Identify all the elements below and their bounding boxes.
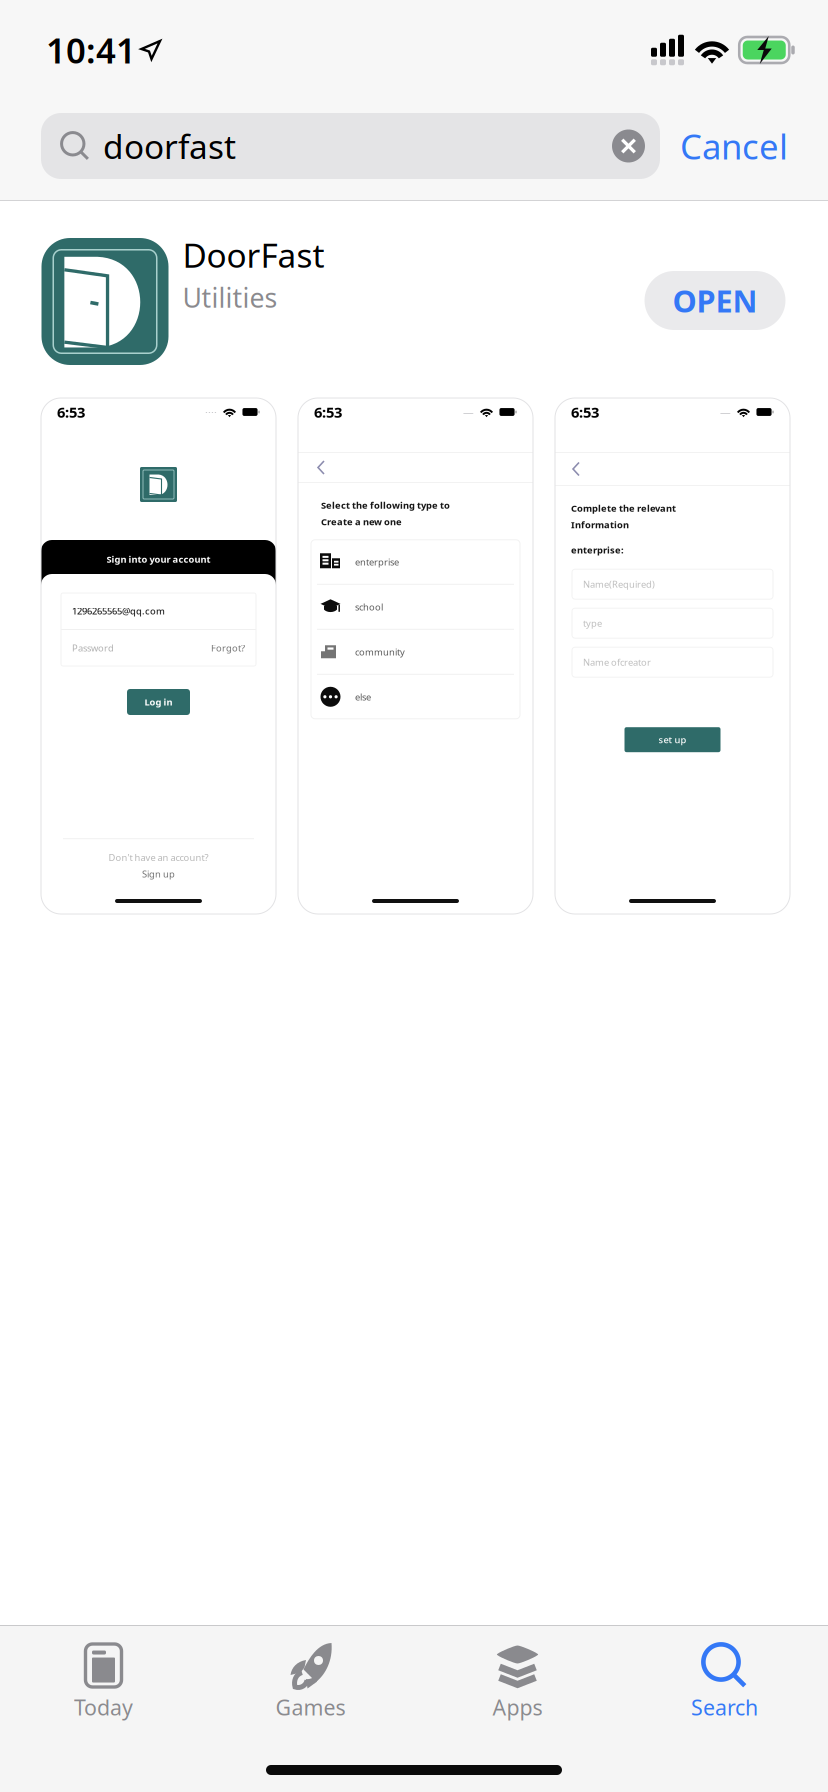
staticText: Create a new one <box>321 515 402 528</box>
staticText: Information <box>571 518 629 531</box>
button[interactable]: Apps <box>414 1642 621 1739</box>
staticText: Utilities <box>182 280 277 315</box>
button[interactable]: Today <box>0 1642 207 1739</box>
staticText: school <box>355 601 383 613</box>
staticText: DoorFast <box>182 233 324 277</box>
staticText: — <box>720 405 731 419</box>
button[interactable]: Screenshot 3 <box>555 398 790 914</box>
button[interactable]: school <box>311 585 520 629</box>
staticText: else <box>355 691 371 703</box>
staticText: Name ofcreator <box>583 656 651 668</box>
button[interactable]: Cancel <box>680 113 788 179</box>
staticText: Apps <box>492 1693 542 1721</box>
staticText: Cancel <box>680 123 788 169</box>
staticText: 6:53 <box>57 402 85 422</box>
staticText: Complete the relevant <box>571 502 676 514</box>
staticText: 6:53 <box>571 402 599 422</box>
button[interactable]: enterprise <box>311 540 520 584</box>
staticText: enterprise: <box>571 544 624 556</box>
staticText: Select the following type to <box>321 499 450 511</box>
staticText: 10:41 <box>46 27 136 73</box>
button[interactable]: Clear search text <box>612 129 645 162</box>
button[interactable]: DoorFast <box>1 201 828 365</box>
staticText: Log in <box>144 696 172 708</box>
staticText: Search <box>691 1693 758 1721</box>
staticText: Don't have an account? <box>108 851 208 864</box>
staticText: Sign up <box>142 868 175 880</box>
staticText: set up <box>658 733 686 746</box>
staticText: Today <box>74 1693 133 1721</box>
staticText: doorfast <box>103 124 236 168</box>
staticText: 6:53 <box>314 402 342 422</box>
button[interactable]: Search <box>621 1642 828 1739</box>
staticText: Games <box>275 1693 345 1721</box>
button[interactable]: Screenshot 2 <box>298 398 533 914</box>
staticText: 1296265565@qq.com <box>72 605 165 617</box>
staticText: enterprise <box>355 556 399 568</box>
button[interactable]: Screenshot 1 <box>41 398 276 914</box>
staticText: Sign into your account <box>106 553 210 565</box>
staticText: Name(Required) <box>583 578 655 590</box>
button[interactable]: Games <box>207 1642 414 1739</box>
staticText: type <box>583 617 602 629</box>
button[interactable]: else <box>311 675 520 719</box>
button[interactable]: community <box>311 630 520 674</box>
staticText: — <box>463 405 474 419</box>
staticText: Forgot? <box>211 642 245 654</box>
staticText: community <box>355 646 405 658</box>
staticText: Password <box>72 642 114 654</box>
staticText: OPEN <box>672 280 757 321</box>
staticText: ···· <box>205 405 217 419</box>
